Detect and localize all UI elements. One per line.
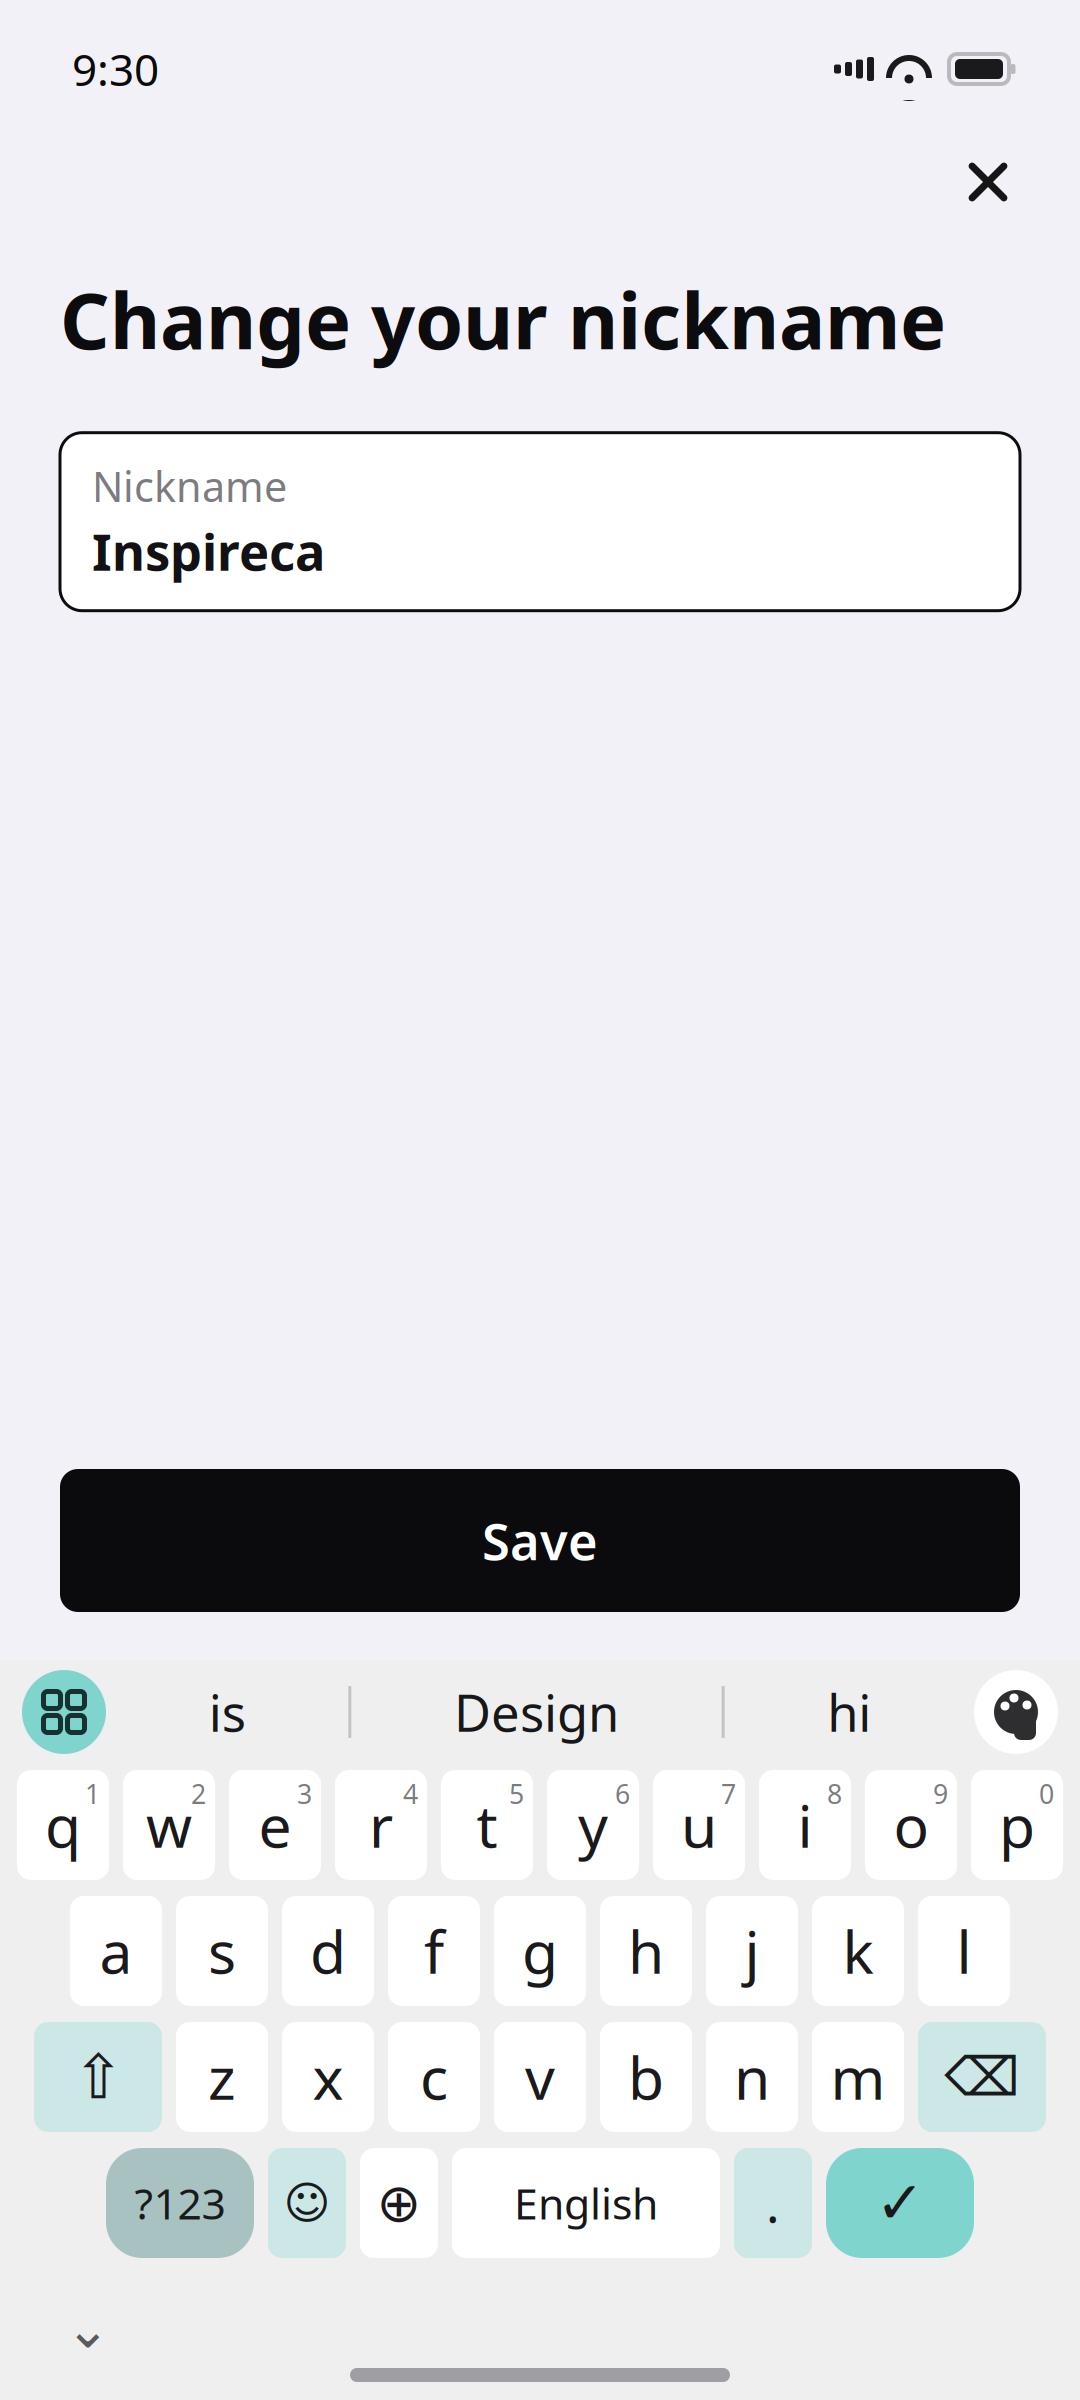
staticText: j (744, 1912, 759, 1990)
staticText: v (525, 2038, 555, 2116)
staticText: s (208, 1912, 236, 1990)
button[interactable]: c (388, 2022, 480, 2132)
button[interactable]: k (812, 1896, 904, 2006)
staticText: n (734, 2038, 770, 2116)
button[interactable]: b (600, 2022, 692, 2132)
staticText: f (424, 1912, 444, 1990)
staticText: ✓ (875, 2170, 924, 2236)
staticText: w (146, 1786, 192, 1864)
staticText: ⌄ (65, 2299, 110, 2359)
staticText: English (514, 2175, 658, 2231)
button[interactable]: j (706, 1896, 798, 2006)
button[interactable]: y (547, 1770, 639, 1880)
button[interactable]: hi (799, 1668, 899, 1756)
button[interactable]: e (229, 1770, 321, 1880)
staticText: r (369, 1786, 393, 1864)
staticText: hi (827, 1678, 871, 1746)
staticText: Change your nickname (60, 268, 946, 371)
staticText: x (312, 2038, 343, 2116)
staticText: 2 (191, 1776, 206, 1811)
staticText: 1 (85, 1776, 100, 1811)
button[interactable]: d (282, 1896, 374, 2006)
staticText: is (209, 1678, 246, 1746)
staticText: g (522, 1912, 558, 1990)
button[interactable]: f (388, 1896, 480, 2006)
staticText: q (45, 1786, 81, 1864)
staticText: u (681, 1786, 717, 1864)
button[interactable]: t (441, 1770, 533, 1880)
staticText: p (999, 1786, 1035, 1864)
button[interactable]: n (706, 2022, 798, 2132)
button[interactable]: Themes (974, 1670, 1058, 1754)
button[interactable]: z (176, 2022, 268, 2132)
staticText: Design (454, 1678, 619, 1746)
button[interactable]: o (865, 1770, 957, 1880)
button[interactable]: Switch language (360, 2148, 438, 2258)
staticText: Nickname (92, 459, 287, 513)
button[interactable]: Shift (34, 2022, 162, 2132)
staticText: 8 (827, 1776, 842, 1811)
staticText: 3 (297, 1776, 312, 1811)
button[interactable]: Emoji (268, 2148, 346, 2258)
button[interactable]: Nickname (60, 433, 1020, 611)
staticText: 7 (721, 1776, 736, 1811)
button[interactable]: Design (426, 1668, 647, 1756)
staticText: 9:30 (72, 40, 159, 98)
button[interactable]: u (653, 1770, 745, 1880)
staticText: m (830, 2038, 885, 2116)
button[interactable]: p (971, 1770, 1063, 1880)
staticText: Inspireca (92, 517, 325, 585)
staticText: h (628, 1912, 664, 1990)
staticText: d (310, 1912, 346, 1990)
button[interactable]: Keyboard options (22, 1670, 106, 1754)
staticText: z (208, 2038, 236, 2116)
button[interactable]: s (176, 1896, 268, 2006)
button[interactable]: English (452, 2148, 720, 2258)
staticText: Save (482, 1507, 598, 1574)
staticText: 5 (509, 1776, 524, 1811)
staticText: c (420, 2038, 448, 2116)
button[interactable]: Delete (918, 2022, 1046, 2132)
staticText: o (893, 1786, 928, 1864)
staticText: 6 (615, 1776, 630, 1811)
staticText: k (842, 1912, 873, 1990)
button[interactable]: x (282, 2022, 374, 2132)
staticText: ?123 (134, 2175, 225, 2231)
button[interactable]: h (600, 1896, 692, 2006)
staticText: i (797, 1786, 812, 1864)
staticText: 4 (403, 1776, 418, 1811)
staticText: a (99, 1912, 132, 1990)
staticText: . (766, 2169, 780, 2237)
staticText: b (628, 2038, 664, 2116)
staticText: e (258, 1786, 291, 1864)
button[interactable]: w (123, 1770, 215, 1880)
staticText: ⌫ (944, 2047, 1019, 2107)
button[interactable]: a (70, 1896, 162, 2006)
button[interactable]: Period (734, 2148, 812, 2258)
staticText: ⊕ (376, 2173, 421, 2233)
button[interactable]: Close (950, 144, 1026, 220)
staticText: t (476, 1786, 497, 1864)
staticText: y (578, 1786, 608, 1864)
staticText: 9 (933, 1776, 948, 1811)
button[interactable]: Save (60, 1469, 1020, 1612)
button[interactable]: m (812, 2022, 904, 2132)
staticText: ☺ (283, 2177, 330, 2229)
button[interactable]: is (181, 1668, 274, 1756)
button[interactable]: g (494, 1896, 586, 2006)
button[interactable]: r (335, 1770, 427, 1880)
button[interactable]: Numbers and symbols (106, 2148, 254, 2258)
button[interactable]: i (759, 1770, 851, 1880)
staticText: l (956, 1912, 971, 1990)
button[interactable]: l (918, 1896, 1010, 2006)
button[interactable]: Hide keyboard (48, 2299, 128, 2359)
staticText: 0 (1039, 1776, 1054, 1811)
button[interactable]: Return (826, 2148, 974, 2258)
staticText: ⇧ (72, 2042, 123, 2112)
button[interactable]: v (494, 2022, 586, 2132)
button[interactable]: q (17, 1770, 109, 1880)
